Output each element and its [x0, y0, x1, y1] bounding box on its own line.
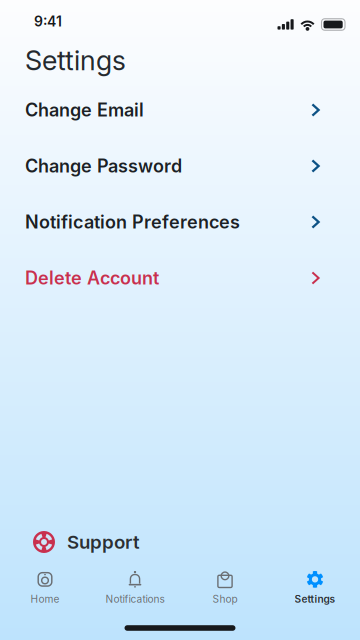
button[interactable]: Change Password [0, 138, 360, 194]
button[interactable]: Shop [180, 568, 270, 608]
staticText: Home [30, 593, 59, 605]
staticText: Change Password [25, 155, 182, 177]
staticText: Change Email [25, 99, 144, 121]
button[interactable]: Settings [270, 568, 360, 608]
button[interactable]: Notification Preferences [0, 194, 360, 250]
staticText: Notifications [105, 593, 164, 605]
staticText: Notification Preferences [25, 211, 240, 233]
button[interactable]: Home [0, 568, 90, 608]
staticText: Delete Account [25, 267, 159, 289]
button[interactable]: Support [0, 528, 360, 556]
staticText: 9:41 [34, 13, 62, 30]
button[interactable]: Delete Account [0, 250, 360, 306]
staticText: Support [67, 531, 140, 553]
staticText: Settings [294, 593, 335, 605]
button[interactable]: Notifications [90, 568, 180, 608]
staticText: Settings [25, 44, 126, 77]
button[interactable]: Change Email [0, 82, 360, 138]
staticText: Shop [212, 593, 237, 605]
